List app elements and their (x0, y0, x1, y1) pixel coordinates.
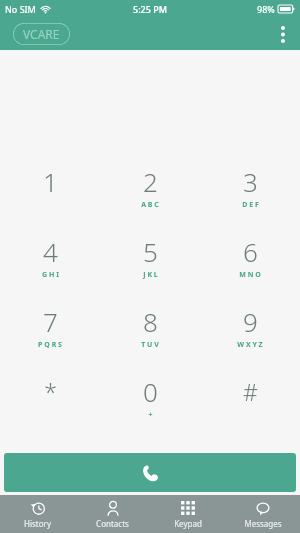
button[interactable]: 2 (100, 152, 200, 222)
staticText: 4 (43, 234, 58, 269)
button[interactable]: More options (266, 18, 300, 50)
button[interactable]: 8 (100, 292, 200, 362)
staticText: Contacts (96, 518, 129, 529)
button[interactable]: History (0, 495, 75, 533)
staticText: M N O (239, 270, 261, 280)
button[interactable]: 4 (0, 222, 100, 292)
button[interactable]: Contacts (75, 495, 150, 533)
staticText: G H I (42, 270, 59, 280)
button[interactable]: * (0, 362, 100, 432)
staticText: W X Y Z (237, 340, 263, 350)
button[interactable]: Keypad (150, 495, 225, 533)
staticText: 5:25 PM (133, 3, 167, 15)
staticText: D E F (242, 200, 259, 210)
staticText: A B C (141, 200, 159, 210)
button[interactable]: 5 (100, 222, 200, 292)
button[interactable]: 7 (0, 292, 100, 362)
staticText: P Q R S (38, 340, 62, 350)
staticText: No SIM (5, 3, 36, 15)
button[interactable]: 6 (200, 222, 300, 292)
button[interactable]: Call (4, 453, 296, 492)
button[interactable]: 1 (0, 152, 100, 222)
staticText: Messages (244, 518, 282, 529)
staticText: T U V (141, 340, 159, 350)
staticText: VCARE (23, 26, 60, 42)
button[interactable]: 3 (200, 152, 300, 222)
staticText: 2 (143, 164, 158, 199)
button[interactable]: # (200, 362, 300, 432)
staticText: * (44, 376, 57, 407)
staticText: + (148, 410, 153, 420)
button[interactable]: VCARE (13, 23, 70, 45)
staticText: 7 (43, 304, 58, 339)
staticText: Keypad (174, 518, 202, 529)
staticText: History (24, 518, 51, 529)
staticText: 8 (143, 304, 158, 339)
staticText: 5 (143, 234, 158, 269)
staticText: 3 (243, 164, 258, 199)
staticText: 9 (243, 304, 258, 339)
staticText: 98% (257, 3, 275, 15)
button[interactable]: 9 (200, 292, 300, 362)
staticText: 6 (243, 234, 258, 269)
button[interactable]: Messages (225, 495, 300, 533)
button[interactable]: 0 (100, 362, 200, 432)
staticText: 0 (143, 374, 158, 409)
staticText: # (243, 376, 258, 407)
staticText: J K L (143, 270, 158, 280)
staticText: 1 (43, 164, 58, 199)
